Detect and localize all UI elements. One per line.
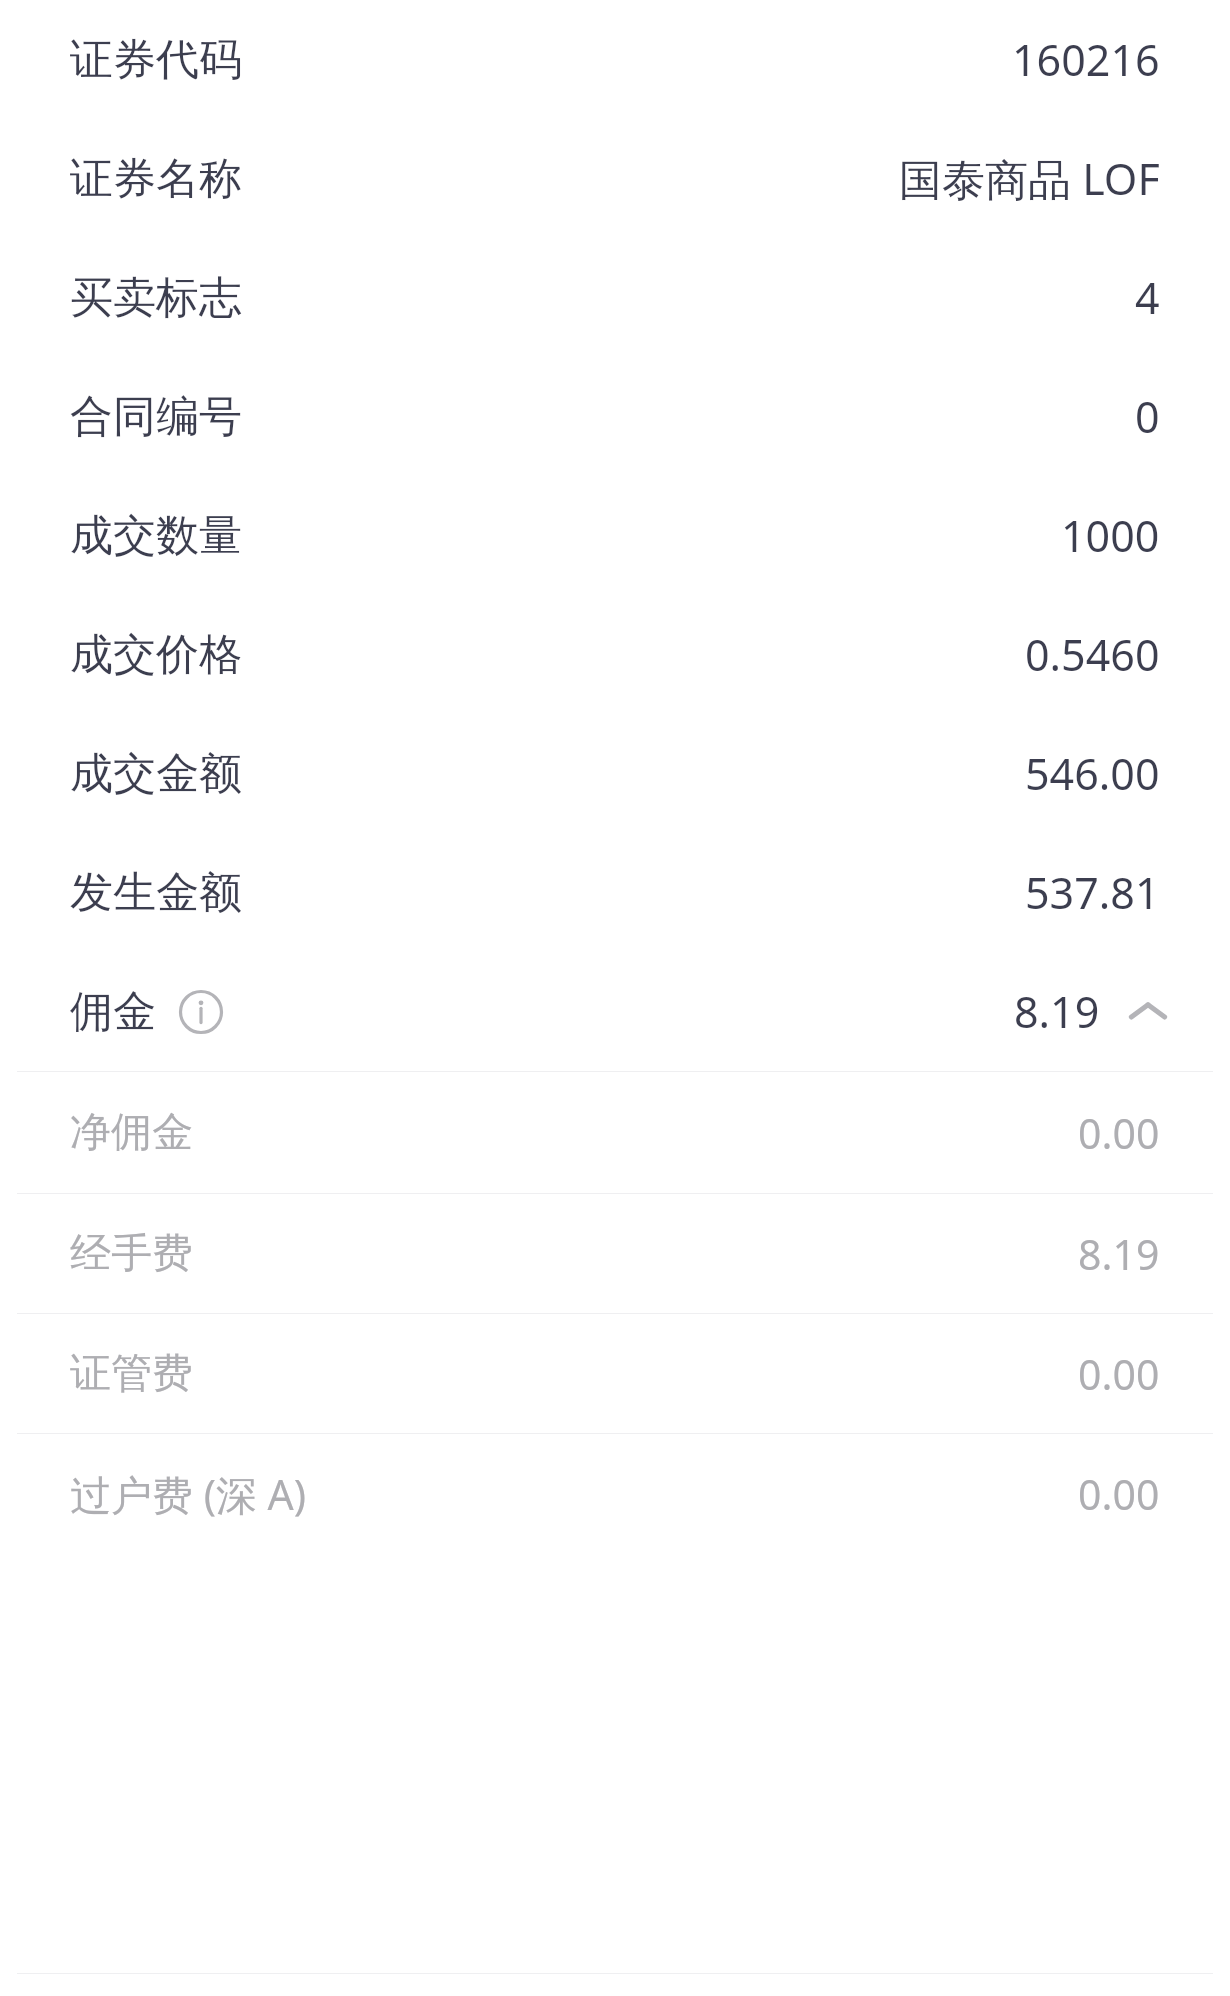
button[interactable]: 经手费 xyxy=(0,1194,1230,1313)
staticText: 0 xyxy=(1135,387,1160,446)
staticText: 8.19 xyxy=(1078,1226,1160,1282)
staticText: 0.5460 xyxy=(1025,625,1160,684)
staticText: 证券代码 xyxy=(70,33,242,87)
staticText: 证管费 xyxy=(70,1348,193,1400)
button[interactable]: 佣金 xyxy=(0,952,1230,1071)
button[interactable]: 证管费 xyxy=(0,1314,1230,1433)
staticText: 0.00 xyxy=(1078,1466,1160,1522)
button[interactable]: 成交金额 xyxy=(0,714,1230,833)
staticText: 过户费 (深 A) xyxy=(70,1466,307,1522)
staticText: 成交金额 xyxy=(70,747,242,801)
button[interactable]: 成交数量 xyxy=(0,476,1230,595)
staticText: 成交价格 xyxy=(70,628,242,682)
staticText: 佣金 xyxy=(70,985,156,1039)
staticText: 0.00 xyxy=(1078,1346,1160,1402)
staticText: 0.00 xyxy=(1078,1105,1160,1161)
staticText: 发生金额 xyxy=(70,866,242,920)
staticText: 经手费 xyxy=(70,1228,193,1280)
button[interactable]: 发生金额 xyxy=(0,833,1230,952)
staticText: 证券名称 xyxy=(70,152,242,206)
button[interactable]: 成交价格 xyxy=(0,595,1230,714)
staticText: 1000 xyxy=(1061,506,1160,565)
button[interactable]: 合同编号 xyxy=(0,357,1230,476)
staticText: 成交数量 xyxy=(70,509,242,563)
staticText: 净佣金 xyxy=(70,1107,193,1159)
button[interactable]: 买卖标志 xyxy=(0,238,1230,357)
staticText: 160216 xyxy=(1012,30,1160,89)
staticText: 537.81 xyxy=(1025,863,1160,922)
staticText: 4 xyxy=(1135,268,1160,327)
button[interactable]: 净佣金 xyxy=(0,1072,1230,1193)
staticText: 合同编号 xyxy=(70,390,242,444)
other: 收起明细 xyxy=(1122,994,1174,1030)
staticText: 买卖标志 xyxy=(70,271,242,325)
staticText: 8.19 xyxy=(1014,982,1100,1041)
other: 佣金说明 xyxy=(178,989,224,1035)
staticText: 546.00 xyxy=(1025,744,1160,803)
staticText: 国泰商品 LOF xyxy=(899,149,1160,208)
button[interactable]: 证券代码 xyxy=(0,0,1230,119)
button[interactable]: 证券名称 xyxy=(0,119,1230,238)
button[interactable]: 过户费 (深 A) xyxy=(0,1434,1230,1554)
